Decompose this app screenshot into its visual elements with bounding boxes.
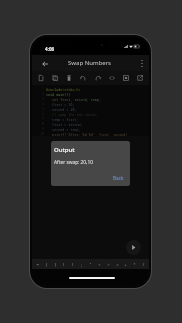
button[interactable]: } <box>52 260 59 268</box>
staticText: second = 20; <box>46 107 77 112</box>
staticText: #include<stdio.h> <box>46 87 81 92</box>
button[interactable]: Delete <box>63 72 75 84</box>
button[interactable]: Run <box>126 240 141 255</box>
staticText: 4 <box>42 102 44 106</box>
button[interactable]: { <box>43 260 50 268</box>
staticText: temp = first; <box>46 117 79 122</box>
staticText: 2 <box>42 92 44 96</box>
staticText: ) <box>71 262 74 267</box>
button[interactable]: Copy <box>49 72 61 84</box>
staticText: 10 <box>40 132 44 136</box>
staticText: > <box>107 262 110 267</box>
button[interactable]: " <box>87 260 94 268</box>
button[interactable]: More options <box>136 58 147 69</box>
staticText: ( <box>62 262 65 267</box>
staticText: } <box>54 262 57 267</box>
button[interactable]: ( <box>60 260 67 268</box>
staticText: * <box>133 262 136 267</box>
staticText: Output <box>54 146 75 154</box>
staticText: = <box>116 262 119 267</box>
staticText: + <box>124 262 127 267</box>
staticText: After swap: 20,10 <box>54 159 93 166</box>
staticText: ; <box>80 262 83 267</box>
staticText: 6 <box>42 112 44 116</box>
button[interactable]: Insert code <box>106 72 118 84</box>
staticText: first = 10; <box>46 102 75 107</box>
button[interactable]: ; <box>78 260 85 268</box>
staticText: < <box>98 262 101 267</box>
button[interactable]: + <box>122 260 129 268</box>
staticText: // swap the two values <box>46 112 97 117</box>
staticText: int first, second, temp; <box>46 97 101 102</box>
staticText: 9 <box>42 127 44 131</box>
button[interactable]: = <box>114 260 121 268</box>
staticText: 5 <box>42 107 44 111</box>
staticText: 8 <box>42 122 44 126</box>
staticText: / <box>142 262 145 267</box>
staticText: printf("After: %d %d", first, second); <box>46 132 130 136</box>
button[interactable]: * <box>131 260 138 268</box>
staticText: Swap Numbers <box>68 59 111 67</box>
button[interactable]: ⇥ <box>34 260 41 268</box>
staticText: ⇥ <box>36 262 39 267</box>
staticText: { <box>45 262 48 267</box>
button[interactable]: Back <box>111 174 126 182</box>
button[interactable]: Redo <box>92 72 104 84</box>
button[interactable]: ) <box>69 260 76 268</box>
button[interactable]: Back <box>39 58 50 69</box>
staticText: first = second; <box>46 122 83 127</box>
staticText: 7 <box>42 117 44 121</box>
staticText: " <box>89 262 92 267</box>
staticText: second = temp; <box>46 127 81 132</box>
staticText: 4:06 <box>45 46 55 52</box>
button[interactable]: < <box>96 260 103 268</box>
button[interactable]: Console <box>120 72 132 84</box>
button[interactable]: > <box>105 260 112 268</box>
staticText: void main(){ <box>46 92 71 97</box>
staticText: Back <box>113 175 124 181</box>
button[interactable]: Share <box>134 72 146 84</box>
button[interactable]: / <box>140 260 147 268</box>
button[interactable]: New file <box>35 72 47 84</box>
staticText: 3 <box>42 97 44 101</box>
button[interactable]: Undo <box>77 72 89 84</box>
